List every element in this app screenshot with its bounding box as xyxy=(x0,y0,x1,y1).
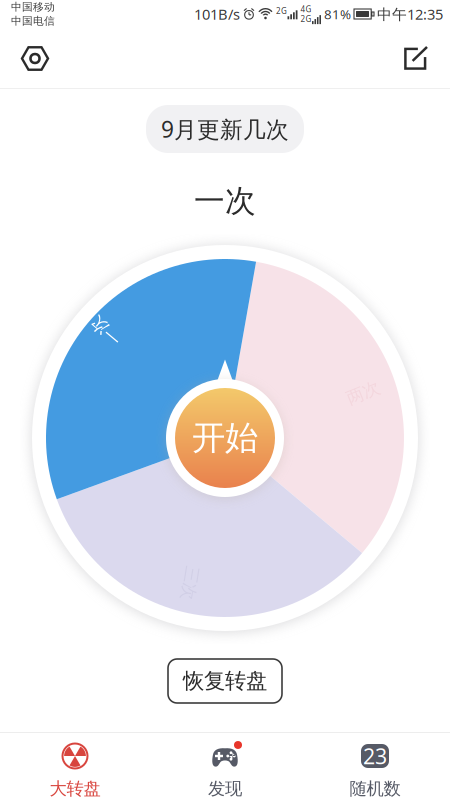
button[interactable]: 大转盘 xyxy=(0,732,150,800)
staticText: 随机数 xyxy=(349,778,400,799)
staticText: 4G xyxy=(300,4,311,14)
staticText: 101B/s xyxy=(194,4,240,24)
staticText: 2G xyxy=(276,6,287,16)
button[interactable]: 发现 xyxy=(150,732,300,800)
staticText: 中国移动 xyxy=(11,0,55,13)
button[interactable]: 23 xyxy=(300,732,450,800)
staticText: 一次 xyxy=(194,182,256,220)
staticText: 两次 xyxy=(346,382,380,404)
staticText: 开始 xyxy=(192,417,258,458)
staticText: 发现 xyxy=(208,778,242,799)
button[interactable]: 开始 xyxy=(166,379,284,497)
staticText: 23 xyxy=(363,742,387,770)
staticText: 中国电信 xyxy=(11,14,55,28)
staticText: 81% xyxy=(324,5,351,23)
button[interactable]: Edit xyxy=(393,36,437,80)
button[interactable]: Settings xyxy=(13,36,57,80)
staticText: 大转盘 xyxy=(49,778,100,799)
staticText: 中午12:35 xyxy=(377,4,443,24)
button[interactable]: 恢复转盘 xyxy=(168,659,282,703)
staticText: 恢复转盘 xyxy=(183,668,267,694)
staticText: 2G xyxy=(300,13,311,24)
staticText: 一次 xyxy=(89,320,123,342)
staticText: 9月更新几次 xyxy=(161,114,289,144)
